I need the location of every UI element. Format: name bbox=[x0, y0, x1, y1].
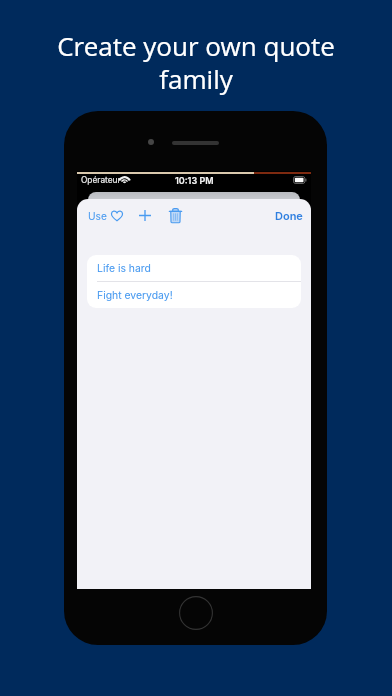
staticText: Use bbox=[88, 210, 107, 222]
staticText: 10:13 PM bbox=[175, 175, 214, 186]
button[interactable]: Done bbox=[270, 204, 308, 227]
button[interactable]: Fight everyday! bbox=[87, 282, 301, 308]
button[interactable]: Delete bbox=[166, 201, 185, 229]
staticText: Life is hard bbox=[97, 262, 151, 275]
button[interactable]: Life is hard bbox=[87, 255, 301, 281]
button[interactable]: Add bbox=[135, 201, 155, 229]
staticText: Opérateur bbox=[81, 175, 121, 185]
staticText: Fight everyday! bbox=[97, 289, 173, 302]
staticText: Done bbox=[275, 209, 303, 222]
staticText: Create your own quote family bbox=[50, 28, 342, 97]
button[interactable]: Use bbox=[83, 204, 128, 227]
